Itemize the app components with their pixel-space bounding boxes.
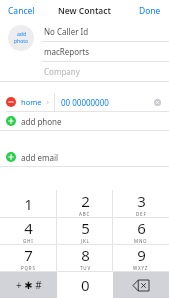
button[interactable]: 8 <box>57 245 113 271</box>
button[interactable]: Cancel <box>6 3 37 19</box>
staticText: + ✱ # <box>16 278 42 292</box>
staticText: 7 <box>24 245 33 265</box>
button[interactable]: macReports <box>42 42 169 61</box>
staticText: 0 <box>81 275 90 295</box>
button[interactable]: Done <box>137 3 163 19</box>
staticText: add <box>17 31 26 38</box>
staticText: ABC <box>79 211 91 217</box>
staticText: home <box>21 97 42 107</box>
staticText: 6 <box>137 218 146 238</box>
button[interactable]: Symbols <box>0 272 57 298</box>
button[interactable]: 4 <box>0 218 57 244</box>
staticText: macReports <box>44 46 90 57</box>
button[interactable]: 0 <box>57 272 113 298</box>
button[interactable]: add phone <box>0 112 169 130</box>
staticText: No Caller Id <box>44 26 89 37</box>
button[interactable]: 2 <box>57 190 113 217</box>
staticText: 5 <box>81 218 90 238</box>
staticText: 9 <box>137 245 146 265</box>
button[interactable]: 9 <box>113 245 169 271</box>
staticText: add phone <box>21 116 62 127</box>
staticText: TUV <box>80 265 91 271</box>
button[interactable]: 5 <box>57 218 113 244</box>
staticText: PQRS <box>21 265 36 271</box>
staticText: 1 <box>24 194 33 214</box>
button[interactable]: Clear <box>152 97 163 108</box>
button[interactable]: No Caller Id <box>42 22 169 41</box>
staticText: GHI <box>23 238 34 244</box>
staticText: JKL <box>81 238 90 244</box>
staticText: WXYZ <box>133 265 149 271</box>
staticText: 3 <box>137 191 146 211</box>
staticText: 4 <box>24 218 33 238</box>
staticText: MNO <box>134 238 148 244</box>
button[interactable]: Delete <box>113 272 169 298</box>
button[interactable]: 3 <box>113 190 169 217</box>
button[interactable]: add email <box>0 148 169 166</box>
button[interactable]: Company <box>42 62 169 81</box>
button[interactable]: 1 <box>0 190 57 217</box>
button[interactable]: 6 <box>113 218 169 244</box>
staticText: Cancel <box>8 5 35 17</box>
staticText: photo <box>14 38 29 45</box>
staticText: 2 <box>81 191 90 211</box>
staticText: New Contact <box>58 5 112 17</box>
staticText: 8 <box>81 245 90 265</box>
staticText: add email <box>21 152 59 163</box>
staticText: 00 00000000 <box>61 97 109 108</box>
button[interactable]: Add photo <box>8 25 34 51</box>
button[interactable]: home <box>0 93 169 111</box>
staticText: DEF <box>136 211 147 217</box>
staticText: Done <box>139 5 161 17</box>
staticText: Company <box>44 66 80 77</box>
button[interactable]: 7 <box>0 245 57 271</box>
